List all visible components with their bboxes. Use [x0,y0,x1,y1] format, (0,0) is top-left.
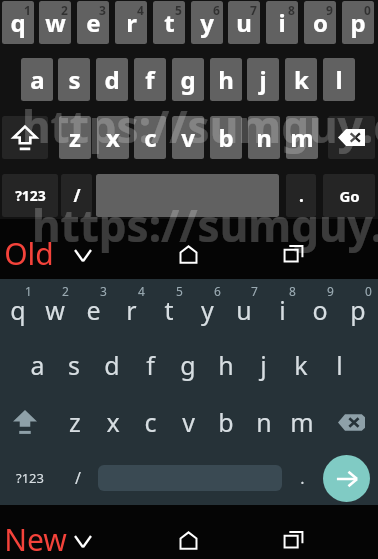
button[interactable]: u [228,288,260,332]
button[interactable]: n [248,400,280,444]
staticText: 1 [25,283,32,299]
staticText: 0 [364,2,371,18]
button[interactable]: u [228,1,260,44]
staticText: New [4,519,67,559]
button[interactable]: . [286,174,316,217]
staticText: p [350,293,366,327]
button[interactable]: x [97,116,129,159]
button[interactable]: g [172,58,204,101]
button[interactable]: t [153,1,185,44]
button[interactable]: Home [168,521,208,559]
staticText: 1 [24,2,31,18]
button[interactable]: ?123 [2,456,58,500]
staticText: v [182,405,195,439]
staticText: x [106,405,120,439]
button[interactable]: z [59,116,91,159]
button[interactable]: g [172,343,204,387]
button[interactable]: q [2,288,34,332]
button[interactable]: Back [65,523,101,559]
button[interactable]: i [266,1,298,44]
button[interactable]: i [266,288,298,332]
button[interactable]: z [59,400,91,444]
staticText: s [68,63,81,96]
button[interactable]: h [210,58,242,101]
button[interactable]: l [323,58,355,101]
button[interactable]: q [2,1,34,44]
button[interactable]: a [21,343,53,387]
button[interactable]: j [247,58,279,101]
button[interactable]: r [115,288,147,332]
button[interactable]: r [115,1,147,44]
button[interactable]: s [58,58,90,101]
button[interactable]: Home [168,235,208,275]
button[interactable]: o [304,1,336,44]
button[interactable]: Backspace [328,116,375,159]
staticText: o [313,6,328,39]
button[interactable]: l [323,343,355,387]
staticText: 9 [327,283,334,299]
staticText: 2 [62,283,69,299]
staticText: g [180,348,196,382]
button[interactable]: Enter [323,455,370,502]
staticText: i [278,6,286,39]
button[interactable]: / [61,174,92,217]
button[interactable]: d [96,343,128,387]
staticText: t [164,293,174,327]
button[interactable]: ?123 [2,174,58,217]
button[interactable]: c [134,116,166,159]
button[interactable]: c [134,400,166,444]
button[interactable]: m [286,116,318,159]
staticText: 4 [137,2,144,18]
staticText: m [290,405,314,439]
button[interactable]: Space [96,174,279,217]
button[interactable]: j [247,343,279,387]
staticText: j [260,348,267,382]
button[interactable]: e [77,288,109,332]
staticText: https://sumguy.com [32,195,378,255]
button[interactable]: x [97,400,129,444]
button[interactable]: Shift [2,116,48,159]
button[interactable]: Back [65,237,101,273]
button[interactable]: Backspace [328,400,375,444]
button[interactable]: / [62,456,93,500]
staticText: f [145,63,155,96]
staticText: z [69,121,81,154]
staticText: h [218,63,234,96]
button[interactable]: Shift [2,400,48,444]
button[interactable]: k [285,343,317,387]
button[interactable]: v [172,116,204,159]
button[interactable]: w [39,288,71,332]
button[interactable]: y [191,288,223,332]
button[interactable]: f [134,58,166,101]
button[interactable]: o [304,288,336,332]
button[interactable]: e [77,1,109,44]
staticText: a [30,348,45,382]
button[interactable]: k [285,58,317,101]
button[interactable]: Recents [273,520,313,559]
button[interactable]: a [21,58,53,101]
staticText: y [200,6,214,39]
button[interactable]: v [172,400,204,444]
button[interactable]: t [153,288,185,332]
button[interactable]: h [210,343,242,387]
button[interactable]: . [288,456,316,500]
button[interactable]: f [134,343,166,387]
button[interactable]: p [342,288,374,332]
button[interactable]: Recents [273,234,313,274]
button[interactable]: p [342,1,374,44]
staticText: Old [4,233,54,274]
button[interactable]: n [248,116,280,159]
button[interactable]: m [286,400,318,444]
staticText: 7 [250,2,257,18]
staticText: e [86,293,101,327]
button[interactable]: b [210,116,242,159]
staticText: n [256,121,272,154]
button[interactable]: Go [323,174,375,217]
button[interactable]: b [210,400,242,444]
button[interactable]: y [191,1,223,44]
staticText: 7 [251,283,258,299]
button[interactable]: d [96,58,128,101]
button[interactable]: s [58,343,90,387]
button[interactable]: w [39,1,71,44]
